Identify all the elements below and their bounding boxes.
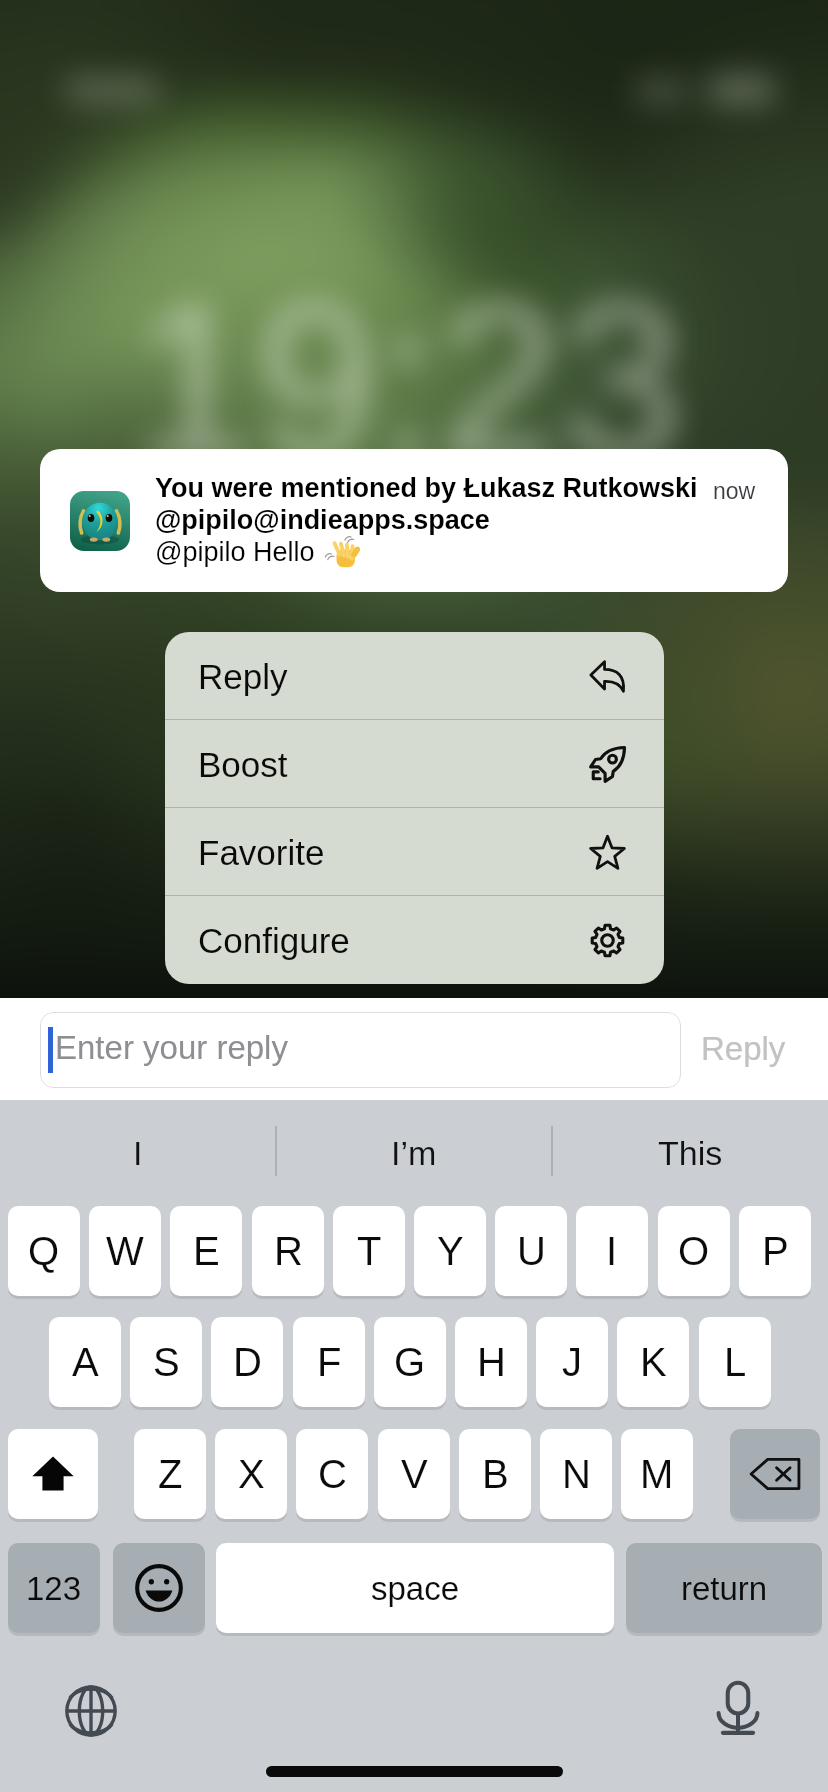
staticText: Configure [198,921,350,960]
button[interactable]: H [455,1317,527,1407]
button[interactable]: W [89,1206,161,1296]
staticText: L [724,1340,747,1385]
staticText: now [713,478,756,504]
staticText: space [371,1570,460,1607]
staticText: P [762,1229,789,1274]
staticText: Boost [198,745,288,784]
button[interactable]: I [0,1100,276,1206]
staticText: G [394,1340,426,1385]
staticText: Enter your reply [55,1029,288,1066]
staticText: S [153,1340,180,1385]
staticText: Z [158,1452,183,1497]
button[interactable]: Boost [165,720,664,808]
staticText: W [106,1229,144,1274]
button[interactable]: return [626,1543,822,1633]
staticText: Reply [701,1030,786,1067]
button[interactable]: Reply [165,632,664,720]
staticText: V [401,1452,428,1497]
button[interactable]: T [333,1206,405,1296]
staticText: R [274,1229,303,1274]
staticText: Q [28,1229,60,1274]
staticText: Y [437,1229,464,1274]
button[interactable]: F [293,1317,365,1407]
staticText: J [562,1340,582,1385]
staticText: E [193,1229,220,1274]
staticText: @pipilo@indieapps.space [155,505,490,535]
button[interactable]: X [215,1429,287,1519]
button[interactable]: D [211,1317,283,1407]
staticText: Favorite [198,833,325,872]
button[interactable]: V [378,1429,450,1519]
button[interactable]: U [495,1206,567,1296]
button[interactable]: B [459,1429,531,1519]
button[interactable]: M [621,1429,693,1519]
staticText: F [317,1340,342,1385]
button[interactable]: N [540,1429,612,1519]
button[interactable]: Configure [165,896,664,984]
staticText: You were mentioned by Łukasz Rutkowski [155,473,698,503]
button[interactable]: Change keyboard [65,1685,117,1737]
button[interactable]: Shift [8,1429,98,1519]
button[interactable]: C [296,1429,368,1519]
button[interactable]: K [617,1317,689,1407]
button[interactable]: Y [414,1206,486,1296]
staticText: X [238,1452,265,1497]
button[interactable]: J [536,1317,608,1407]
button[interactable]: This [552,1100,828,1206]
staticText: This [658,1134,723,1172]
staticText: H [477,1340,506,1385]
staticText: 19:23 [133,258,684,504]
staticText: D [233,1340,262,1385]
staticText: 123 [26,1570,82,1607]
staticText: K [640,1340,667,1385]
staticText: @pipilo Hello [155,537,315,567]
button[interactable]: L [699,1317,771,1407]
staticText: U [517,1229,546,1274]
button[interactable]: O [658,1206,730,1296]
button[interactable]: Emoji [113,1543,205,1633]
staticText: B [482,1452,509,1497]
staticText: I [133,1134,143,1172]
button[interactable]: R [252,1206,324,1296]
button[interactable]: Favorite [165,808,664,896]
button[interactable]: Z [134,1429,206,1519]
staticText: I’m [391,1134,437,1172]
staticText: T [357,1229,382,1274]
button[interactable]: Q [8,1206,80,1296]
button[interactable]: I [576,1206,648,1296]
button[interactable]: Voice input [711,1681,765,1738]
button[interactable]: Reply [690,1004,796,1092]
staticText: M [640,1452,674,1497]
button[interactable]: You were mentioned by Łukasz Rutkowski [40,449,788,592]
staticText: I [606,1229,618,1274]
button[interactable]: G [374,1317,446,1407]
staticText: Reply [198,657,288,696]
button[interactable]: 123 [8,1543,100,1633]
staticText: return [681,1570,768,1607]
button[interactable]: A [49,1317,121,1407]
button[interactable]: S [130,1317,202,1407]
button[interactable]: Enter your reply [40,1012,681,1088]
staticText: O [678,1229,710,1274]
button[interactable]: E [170,1206,242,1296]
staticText: N [562,1452,591,1497]
button[interactable]: space [216,1543,614,1633]
staticText: A [72,1340,99,1385]
button[interactable]: Backspace [730,1429,820,1519]
staticText: C [318,1452,347,1497]
button[interactable]: P [739,1206,811,1296]
button[interactable]: I’m [276,1100,552,1206]
